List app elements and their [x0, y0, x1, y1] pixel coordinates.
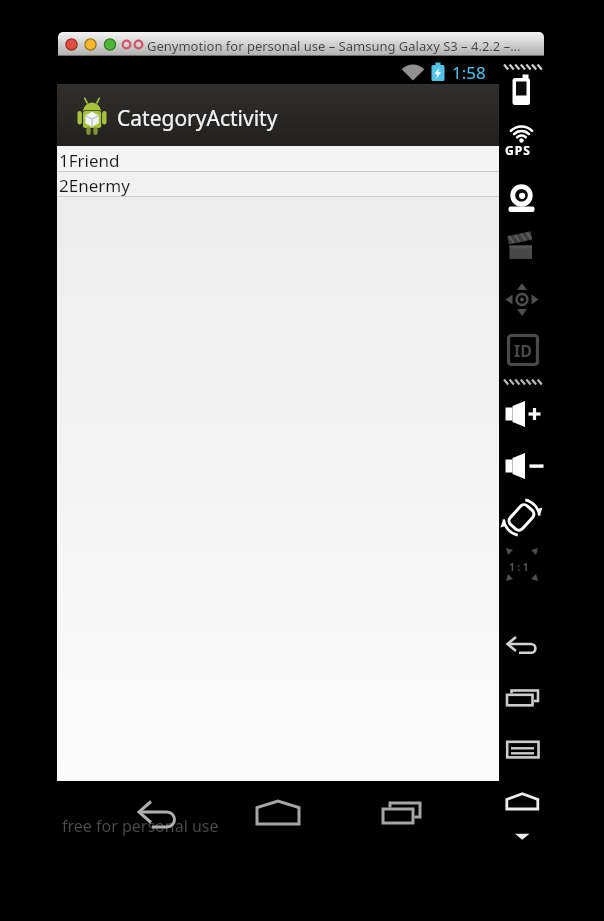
staticText: 1Friend: [59, 149, 120, 172]
staticText: ID: [514, 340, 532, 362]
staticText: CategoryActivity: [117, 104, 278, 133]
staticText: Genymotion for personal use – Samsung Ga…: [147, 37, 521, 55]
staticText: 1:58: [452, 61, 486, 84]
staticText: 2Enermy: [59, 174, 130, 197]
staticText: GPS: [505, 142, 531, 158]
staticText: free for personal use: [62, 815, 219, 837]
staticText: 1 : 1: [509, 560, 529, 574]
